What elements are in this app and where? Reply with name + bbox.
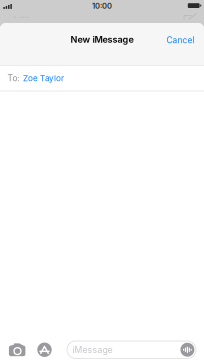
button[interactable]: Take photo <box>9 341 34 358</box>
staticText: Zoe Taylor <box>23 73 64 83</box>
staticText: Cancel <box>166 35 194 45</box>
button[interactable]: To: <box>0 66 204 91</box>
staticText: New iMessage <box>70 34 133 45</box>
button[interactable]: Cancel <box>162 31 198 49</box>
button[interactable]: Record audio message <box>180 343 194 357</box>
button[interactable]: Apps <box>34 341 55 358</box>
staticText: 10:00 <box>92 1 112 11</box>
staticText: iMessage <box>72 344 112 355</box>
staticText: To: <box>7 73 19 83</box>
